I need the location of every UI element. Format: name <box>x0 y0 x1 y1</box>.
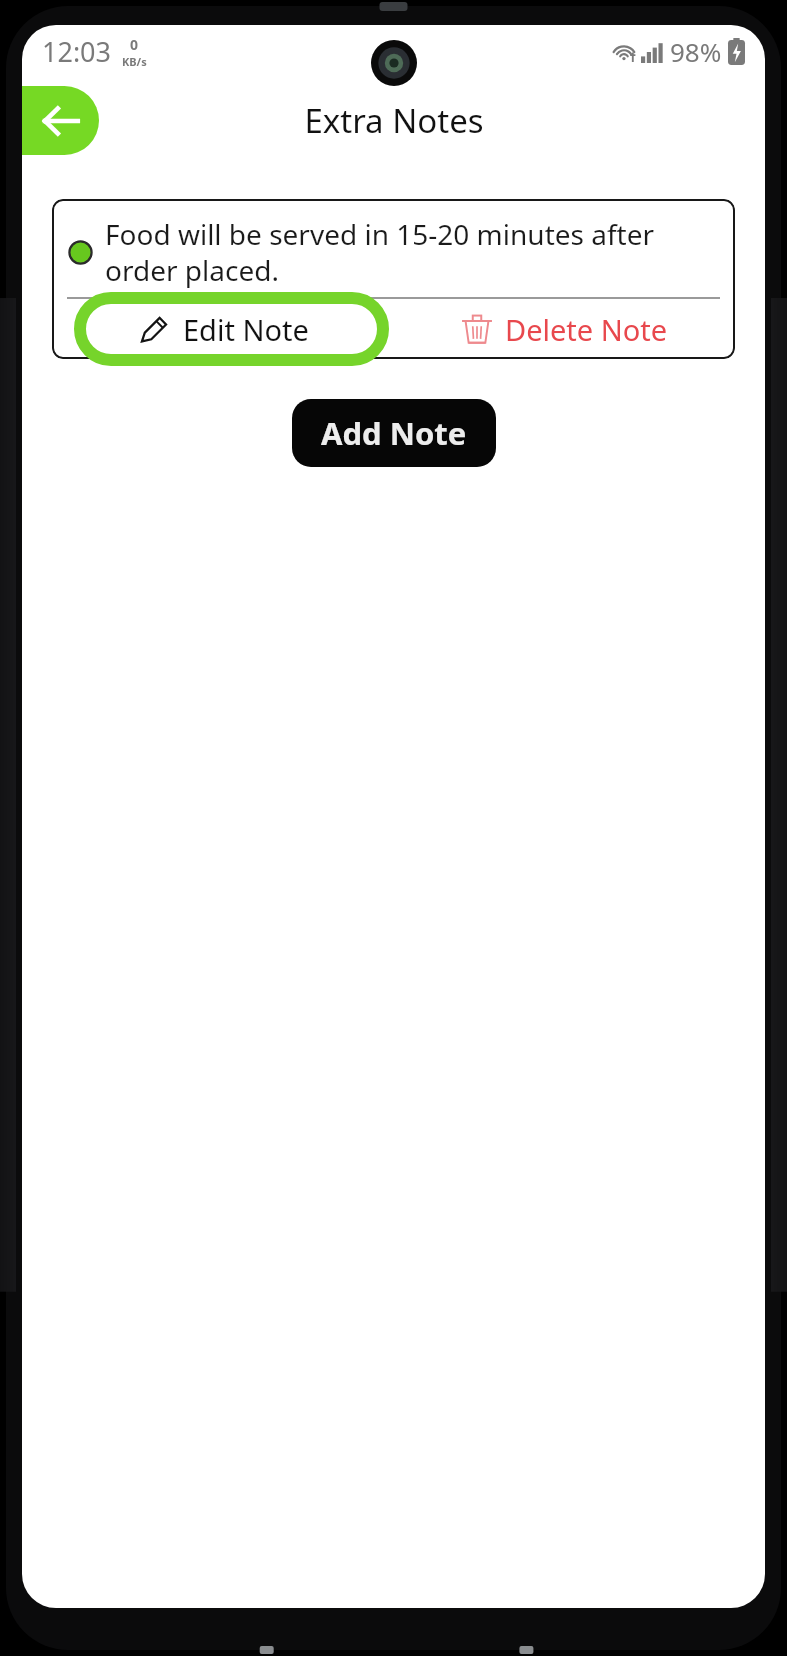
staticText: 12:03 <box>42 33 112 70</box>
staticText: Extra Notes <box>304 98 484 143</box>
staticText: Food will be served in 15-20 minutes aft… <box>105 215 721 289</box>
button[interactable]: Delete Note <box>393 299 735 359</box>
button[interactable]: Back <box>22 86 99 155</box>
staticText: Delete Note <box>505 310 668 349</box>
staticText: Add Note <box>321 412 467 454</box>
button[interactable]: Edit Note <box>52 299 393 359</box>
button[interactable]: Add Note <box>292 399 496 467</box>
staticText: KB/s <box>122 54 147 69</box>
staticText: 0 <box>130 35 139 54</box>
staticText: Edit Note <box>183 310 309 349</box>
staticText: 98% <box>670 34 722 69</box>
